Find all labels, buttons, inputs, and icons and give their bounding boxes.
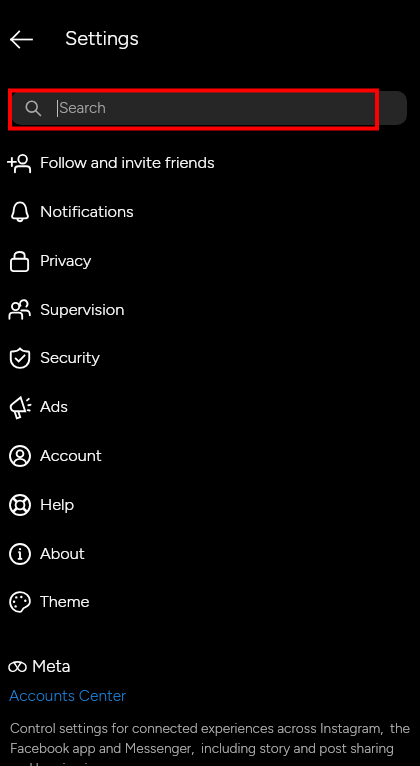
button[interactable]: Follow and invite friends [0,138,420,187]
staticText: Security [40,348,100,368]
button[interactable]: Ads [0,382,420,431]
staticText: Theme [40,592,90,612]
staticText: Help [40,495,75,515]
button[interactable]: Account [0,431,420,480]
button[interactable]: Help [0,480,420,529]
staticText: Follow and invite friends [40,153,215,173]
staticText: Supervision [40,300,125,320]
staticText: Ads [40,397,68,417]
staticText: Search [59,99,106,117]
staticText: About [40,544,85,564]
button[interactable]: Search [11,91,407,125]
button[interactable]: Supervision [0,285,420,334]
button[interactable]: Theme [0,577,420,626]
staticText: Privacy [40,251,92,271]
staticText: Meta [32,656,71,676]
staticText: Control settings for connected experienc… [10,720,420,766]
staticText: Account [40,446,102,466]
button[interactable]: Security [0,333,420,382]
staticText: Settings [65,26,139,50]
button[interactable]: Notifications [0,187,420,236]
button[interactable]: Accounts Center [9,686,127,705]
button[interactable]: Privacy [0,236,420,285]
staticText: Notifications [40,202,134,222]
button[interactable]: Back [7,25,35,53]
button[interactable]: About [0,529,420,578]
